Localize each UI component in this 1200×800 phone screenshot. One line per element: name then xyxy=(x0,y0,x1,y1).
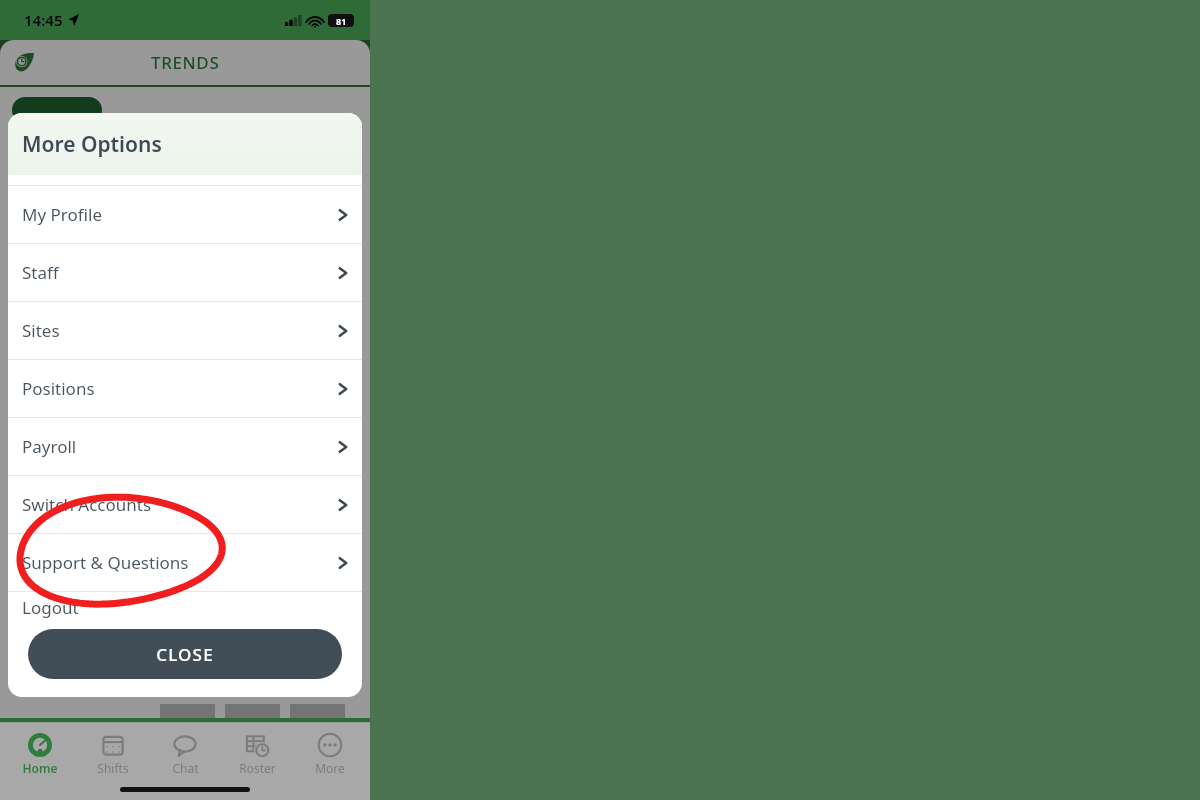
staticText: Payroll xyxy=(22,435,77,458)
staticText: 14:45 xyxy=(24,10,63,30)
button[interactable]: Roster xyxy=(225,731,289,778)
staticText: Switch Accounts xyxy=(22,493,152,516)
button[interactable] xyxy=(12,97,102,123)
staticText: Shifts xyxy=(97,760,129,776)
staticText: More xyxy=(315,760,345,776)
button[interactable]: Staff xyxy=(8,244,362,301)
staticText: Sites xyxy=(22,319,60,342)
button[interactable]: Home xyxy=(8,731,72,778)
staticText: Roster xyxy=(239,760,276,776)
button[interactable]: More xyxy=(298,731,362,778)
staticText: My Profile xyxy=(22,203,102,226)
staticText: Support & Questions xyxy=(22,551,189,574)
staticText: Positions xyxy=(22,377,95,400)
staticText: Logout xyxy=(22,596,79,619)
staticText: Chat xyxy=(172,760,199,776)
button[interactable]: Sites xyxy=(8,302,362,359)
staticText: 81 xyxy=(336,15,347,27)
button[interactable]: Chat xyxy=(153,731,217,778)
button[interactable]: Positions xyxy=(8,360,362,417)
button[interactable]: Switch Accounts xyxy=(8,476,362,533)
staticText: CLOSE xyxy=(156,643,214,666)
staticText: TRENDS xyxy=(151,51,220,74)
staticText: Staff xyxy=(22,261,59,284)
button[interactable]: CLOSE xyxy=(28,629,342,679)
button[interactable]: Logout xyxy=(8,592,362,622)
staticText: Home xyxy=(22,760,58,776)
staticText: More Options xyxy=(22,130,162,159)
button[interactable]: Shifts xyxy=(81,731,145,778)
button[interactable]: Logo xyxy=(10,49,38,77)
button[interactable]: Payroll xyxy=(8,418,362,475)
button[interactable]: Support & Questions xyxy=(8,534,362,591)
button[interactable]: My Profile xyxy=(8,186,362,243)
